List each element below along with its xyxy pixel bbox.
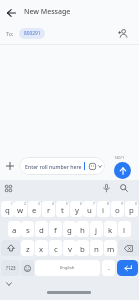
staticText: English: [60, 265, 75, 271]
staticText: d: [39, 225, 44, 236]
staticText: k: [108, 225, 113, 236]
button[interactable]: b: [76, 240, 89, 256]
button[interactable]: [100, 182, 112, 194]
staticText: n: [94, 244, 99, 255]
staticText: s: [26, 225, 30, 236]
button[interactable]: [114, 162, 131, 179]
staticText: y: [75, 205, 79, 216]
staticText: l: [123, 225, 126, 236]
button[interactable]: [118, 240, 139, 256]
staticText: 3: [38, 202, 40, 206]
staticText: .: [108, 263, 110, 273]
staticText: r: [47, 205, 51, 216]
staticText: z: [26, 244, 30, 255]
button[interactable]: j: [90, 221, 103, 237]
button[interactable]: z: [21, 240, 34, 256]
staticText: q: [5, 205, 10, 216]
staticText: g: [67, 225, 72, 236]
staticText: 5: [66, 202, 68, 206]
button[interactable]: [21, 260, 34, 276]
staticText: f: [54, 225, 57, 236]
button[interactable]: 800291: [19, 28, 45, 39]
staticText: c: [54, 244, 58, 255]
button[interactable]: m: [104, 240, 117, 256]
button[interactable]: i: [97, 201, 110, 217]
button[interactable]: [1, 240, 20, 256]
staticText: 8: [107, 202, 109, 206]
staticText: 4: [52, 202, 54, 206]
button[interactable]: [3, 159, 17, 173]
staticText: ?123: [6, 265, 16, 271]
staticText: t: [61, 205, 64, 216]
button[interactable]: d: [35, 221, 48, 237]
button[interactable]: t: [56, 201, 69, 217]
staticText: j: [95, 225, 98, 236]
button[interactable]: l: [118, 221, 131, 237]
button[interactable]: s: [21, 221, 34, 237]
button[interactable]: n: [90, 240, 103, 256]
staticText: 2: [24, 202, 26, 206]
button[interactable]: [4, 7, 18, 19]
staticText: m: [107, 244, 115, 255]
button[interactable]: [3, 279, 15, 289]
button[interactable]: v: [63, 240, 76, 256]
staticText: x: [39, 244, 44, 255]
button[interactable]: [118, 182, 130, 194]
staticText: i: [102, 205, 105, 216]
button[interactable]: ?123: [1, 260, 20, 276]
staticText: 0: [135, 202, 137, 206]
button[interactable]: c: [49, 240, 62, 256]
button[interactable]: f: [49, 221, 62, 237]
button[interactable]: e: [28, 201, 41, 217]
button[interactable]: Enter roll number here: [19, 157, 105, 175]
button[interactable]: u: [83, 201, 96, 217]
button[interactable]: [2, 182, 14, 194]
staticText: New Message: [24, 7, 71, 17]
button[interactable]: p: [125, 201, 138, 217]
staticText: 6: [80, 202, 82, 206]
button[interactable]: English: [35, 260, 100, 276]
staticText: e: [32, 205, 37, 216]
staticText: 7: [93, 202, 95, 206]
button[interactable]: g: [63, 221, 76, 237]
staticText: h: [80, 225, 85, 236]
staticText: o: [115, 205, 120, 216]
staticText: w: [17, 205, 24, 216]
staticText: v: [68, 244, 72, 255]
button[interactable]: [117, 260, 138, 276]
staticText: 1: [11, 202, 13, 206]
button[interactable]: a: [8, 221, 21, 237]
staticText: Enter roll number here: [25, 163, 82, 170]
button[interactable]: q: [1, 201, 14, 217]
button[interactable]: y: [70, 201, 83, 217]
button[interactable]: w: [14, 201, 27, 217]
staticText: 800291: [24, 30, 41, 37]
staticText: To:: [6, 30, 14, 37]
staticText: 140/1: [114, 155, 125, 160]
button[interactable]: o: [111, 201, 124, 217]
button[interactable]: k: [104, 221, 117, 237]
button[interactable]: x: [35, 240, 48, 256]
button[interactable]: [115, 26, 131, 40]
button[interactable]: h: [76, 221, 89, 237]
staticText: 9: [121, 202, 123, 206]
button[interactable]: r: [42, 201, 55, 217]
staticText: p: [129, 205, 134, 216]
staticText: a: [12, 225, 17, 236]
button[interactable]: .: [102, 260, 115, 276]
staticText: b: [80, 244, 85, 255]
staticText: u: [87, 205, 92, 216]
